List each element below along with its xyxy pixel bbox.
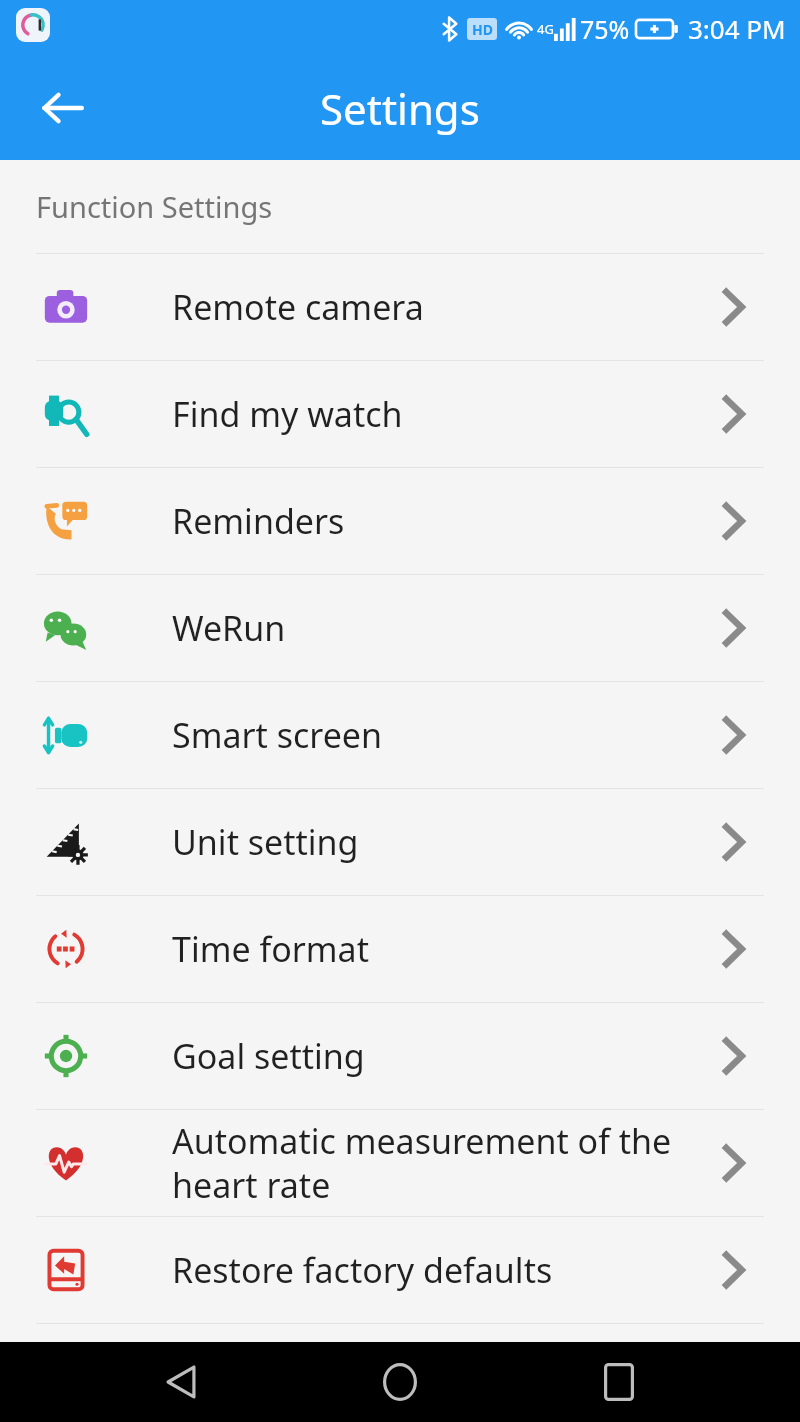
- staticText: Automatic measurement of the heart rate: [172, 1118, 752, 1208]
- button[interactable]: Reminders: [0, 468, 800, 574]
- button[interactable]: Unit setting: [0, 789, 800, 895]
- button[interactable]: Time format: [0, 896, 800, 1002]
- staticText: Restore factory defaults: [172, 1247, 553, 1293]
- staticText: Find my watch: [172, 391, 403, 437]
- button[interactable]: WeRun: [0, 575, 800, 681]
- staticText: 75%: [580, 12, 630, 46]
- button[interactable]: Home: [362, 1344, 438, 1420]
- staticText: Remote camera: [172, 284, 424, 330]
- button[interactable]: Back: [26, 72, 98, 144]
- staticText: Smart screen: [172, 712, 383, 758]
- staticText: Reminders: [172, 498, 345, 544]
- button[interactable]: Restore factory defaults: [0, 1217, 800, 1323]
- button[interactable]: Smart screen: [0, 682, 800, 788]
- button[interactable]: Remote camera: [0, 254, 800, 360]
- staticText: HD: [472, 20, 493, 39]
- staticText: 3:04 PM: [688, 11, 786, 46]
- button[interactable]: Automatic measurement of the heart rate: [0, 1110, 800, 1216]
- button[interactable]: Find my watch: [0, 361, 800, 467]
- staticText: WeRun: [172, 605, 286, 651]
- staticText: Settings: [320, 80, 480, 137]
- staticText: Unit setting: [172, 819, 359, 865]
- staticText: Goal setting: [172, 1033, 365, 1079]
- button[interactable]: Recents: [581, 1344, 657, 1420]
- staticText: Time format: [172, 926, 369, 972]
- button[interactable]: Back: [143, 1344, 219, 1420]
- staticText: Function Settings: [36, 187, 273, 226]
- staticText: 4G: [537, 20, 554, 38]
- button[interactable]: Goal setting: [0, 1003, 800, 1109]
